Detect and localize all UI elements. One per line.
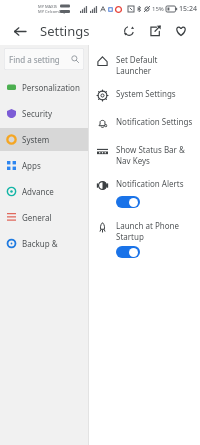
staticText: Show Status Bar &	[116, 144, 185, 155]
staticText: Nav Keys	[116, 155, 150, 166]
staticText: System Settings	[116, 88, 176, 99]
button[interactable]: Toggle on	[116, 196, 140, 208]
button[interactable]: Advance Features	[0, 180, 88, 203]
button[interactable]: Set Default	[89, 54, 200, 76]
staticText: MY MAXIS	[38, 4, 58, 9]
staticText: Personalization	[22, 82, 80, 93]
staticText: Advance Features	[22, 186, 88, 197]
button[interactable]: Backup & Restore	[0, 232, 88, 255]
button[interactable]: System Settings	[89, 88, 200, 102]
button[interactable]: Security	[0, 102, 88, 125]
staticText: Notification Alerts	[116, 178, 184, 189]
staticText: Set Default	[116, 54, 158, 65]
staticText: Find a setting	[9, 54, 60, 65]
button[interactable]: Refresh	[118, 20, 140, 42]
button[interactable]: Show Status Bar &	[89, 144, 200, 166]
staticText: Launch at Phone	[116, 220, 179, 231]
staticText: 15%	[152, 5, 164, 13]
button[interactable]: Personalization	[0, 76, 88, 99]
button[interactable]: Favorite	[170, 20, 192, 42]
button[interactable]: Toggle on	[116, 246, 140, 258]
button[interactable]: Notification Alerts	[89, 178, 200, 208]
button[interactable]: System	[0, 128, 88, 151]
staticText: Security	[22, 108, 53, 119]
staticText: Launcher	[116, 65, 152, 76]
button[interactable]: Notification Settings	[89, 116, 200, 130]
staticText: System	[22, 134, 50, 145]
button[interactable]: Share	[144, 20, 166, 42]
staticText: Apps	[22, 160, 41, 171]
staticText: Settings	[40, 22, 90, 40]
staticText: Backup & Restore	[22, 238, 88, 249]
staticText: Startup	[116, 231, 144, 242]
button[interactable]: Find a setting	[4, 48, 84, 70]
staticText: Notification Settings	[116, 116, 193, 127]
staticText: MY CelcomDigi	[38, 9, 67, 14]
button[interactable]: Apps	[0, 154, 88, 177]
button[interactable]: General	[0, 206, 88, 229]
button[interactable]: Back	[8, 20, 30, 42]
button[interactable]: Launch at Phone	[89, 220, 200, 258]
staticText: General	[22, 212, 52, 223]
staticText: 15:24	[179, 4, 197, 14]
